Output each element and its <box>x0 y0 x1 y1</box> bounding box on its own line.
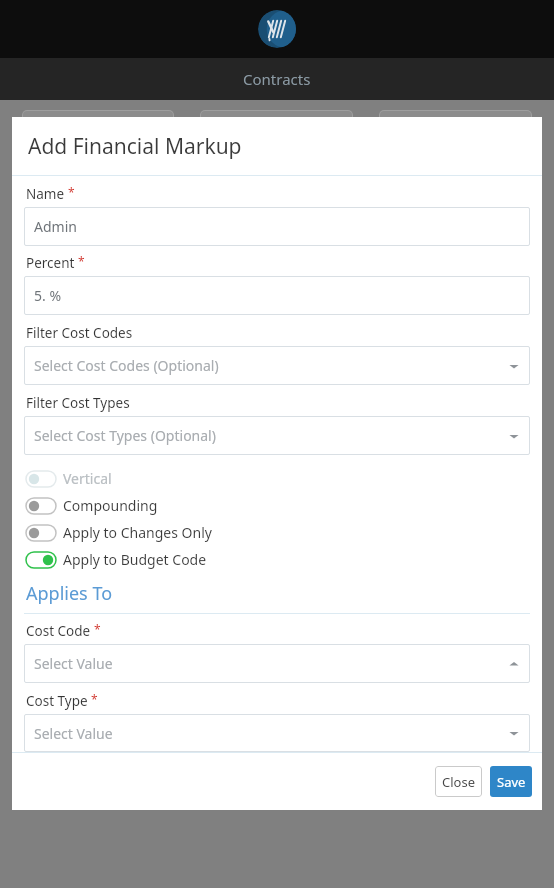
staticText: Apply to Changes Only <box>63 523 212 542</box>
staticText: Select Cost Codes (Optional) <box>34 356 219 375</box>
staticText: Applies To <box>26 581 113 606</box>
staticText: Select Cost Types (Optional) <box>34 426 216 445</box>
staticText: Save <box>497 773 526 791</box>
staticText: Select Value <box>34 654 113 673</box>
button[interactable]: 5. % <box>24 276 530 315</box>
button[interactable]: Select Value <box>24 714 530 752</box>
staticText: Cost Type <box>26 692 88 710</box>
button[interactable]: Vertical <box>24 465 530 492</box>
button[interactable]: Save <box>490 766 532 797</box>
button[interactable]: Contracts <box>0 58 554 100</box>
button[interactable]: Close <box>435 766 482 797</box>
staticText: Select Value <box>34 724 113 743</box>
staticText: Vertical <box>63 469 112 488</box>
staticText: * <box>75 253 85 269</box>
staticText: Name <box>26 185 65 203</box>
staticText: Compounding <box>63 496 158 515</box>
staticText: Apply to Budget Code <box>63 550 207 569</box>
staticText: Filter Cost Codes <box>26 324 133 342</box>
staticText: * <box>91 621 101 637</box>
button[interactable]: Select Value <box>24 644 530 683</box>
staticText: Admin <box>34 217 77 236</box>
button[interactable]: Select Cost Codes (Optional) <box>24 346 530 385</box>
staticText: Percent <box>26 254 75 272</box>
button[interactable]: Apply to Changes Only <box>24 519 530 546</box>
button[interactable]: Select Cost Types (Optional) <box>24 416 530 455</box>
staticText: Cost Code <box>26 622 91 640</box>
staticText: Filter Cost Types <box>26 394 130 412</box>
button[interactable]: Admin <box>24 207 530 246</box>
staticText: Contracts <box>243 69 311 89</box>
staticText: 5. % <box>34 286 62 305</box>
button[interactable]: Apply to Budget Code <box>24 546 530 573</box>
button[interactable]: Compounding <box>24 492 530 519</box>
staticText: Close <box>442 773 475 791</box>
staticText: * <box>65 184 75 200</box>
staticText: Add Financial Markup <box>28 132 242 161</box>
button[interactable]: App logo <box>258 10 296 48</box>
staticText: * <box>88 691 98 707</box>
